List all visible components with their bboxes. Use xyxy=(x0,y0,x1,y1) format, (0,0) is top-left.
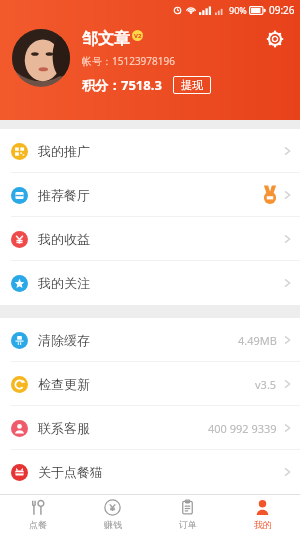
button[interactable]: Profile photo xyxy=(12,29,70,87)
button[interactable]: 提现 xyxy=(173,76,211,94)
staticText: 邹文章 xyxy=(82,29,130,49)
staticText: 提现 xyxy=(181,78,203,92)
staticText: 我的关注 xyxy=(38,275,90,291)
button[interactable]: 推荐餐厅 xyxy=(0,173,300,217)
button[interactable]: 我的推广 xyxy=(0,129,300,173)
button[interactable]: 我的关注 xyxy=(0,261,300,305)
button[interactable]: 联系客服 xyxy=(0,406,300,450)
staticText: 400 992 9339 xyxy=(208,421,277,436)
staticText: 我的 xyxy=(254,519,272,530)
button[interactable]: 关于点餐猫 xyxy=(0,450,300,494)
button[interactable]: 我的收益 xyxy=(0,217,300,261)
staticText: 检查更新 xyxy=(38,376,90,392)
staticText: 联系客服 xyxy=(38,420,90,436)
staticText: 积分：7518.3 xyxy=(82,76,162,94)
button[interactable]: 订单 xyxy=(150,495,225,533)
button[interactable]: 我的 xyxy=(225,495,300,533)
staticText: 订单 xyxy=(179,519,197,530)
staticText: 赚钱 xyxy=(104,519,122,530)
button[interactable]: 赚钱 xyxy=(75,495,150,533)
staticText: v3.5 xyxy=(255,377,277,392)
staticText: 帐号：15123978196 xyxy=(82,54,175,68)
staticText: 09:26 xyxy=(269,3,295,17)
staticText: 我的推广 xyxy=(38,143,90,159)
button[interactable]: 清除缓存 xyxy=(0,318,300,362)
staticText: V2 xyxy=(134,32,142,40)
button[interactable]: 点餐 xyxy=(0,495,75,533)
staticText: 我的收益 xyxy=(38,231,90,247)
button[interactable]: Settings xyxy=(258,22,292,56)
staticText: 关于点餐猫 xyxy=(38,464,103,480)
staticText: 点餐 xyxy=(29,519,47,530)
staticText: 推荐餐厅 xyxy=(38,187,90,203)
button[interactable]: 检查更新 xyxy=(0,362,300,406)
staticText: 清除缓存 xyxy=(38,332,90,348)
staticText: 90% xyxy=(229,4,247,16)
staticText: 4.49MB xyxy=(238,333,277,348)
